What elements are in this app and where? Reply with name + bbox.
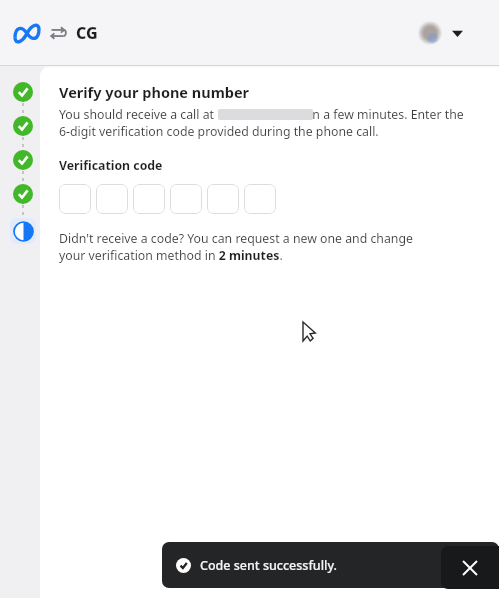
button[interactable]: Close (441, 546, 499, 589)
button[interactable]: Digit 1 (59, 184, 91, 214)
button[interactable]: Account menu (418, 21, 463, 45)
button[interactable]: Meta (14, 23, 40, 43)
button[interactable]: Digit 6 (244, 184, 276, 214)
button[interactable]: Digit 2 (96, 184, 128, 214)
button[interactable]: Digit 3 (133, 184, 165, 214)
staticText: You should receive a call at within a fe… (59, 106, 477, 140)
staticText: CG (76, 22, 98, 44)
staticText: Verification code (59, 157, 163, 174)
button[interactable]: Digit 4 (170, 184, 202, 214)
button[interactable]: Digit 5 (207, 184, 239, 214)
staticText: Didn't receive a code? You can request a… (59, 230, 437, 264)
staticText: Verify your phone number (59, 82, 250, 102)
staticText: Code sent successfully. (200, 557, 337, 574)
